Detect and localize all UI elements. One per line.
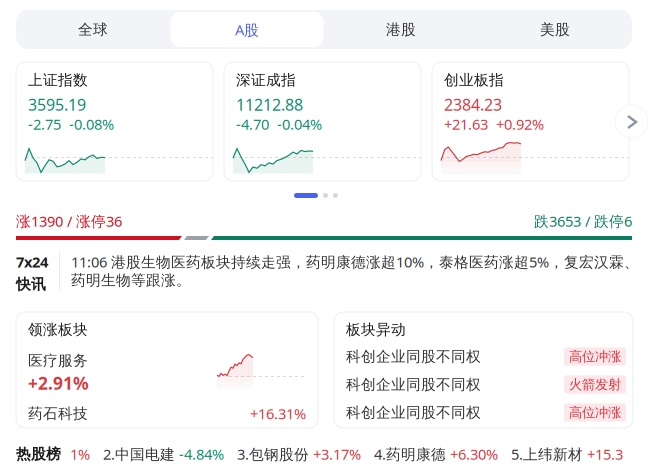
staticText: 板块异动 — [346, 320, 406, 338]
staticText: 热股榜 — [16, 445, 61, 463]
staticText: 1% — [70, 444, 90, 464]
button[interactable]: 深证成指 — [224, 62, 421, 181]
button[interactable]: 全球 — [16, 10, 170, 49]
staticText: 高位冲涨 — [569, 348, 621, 365]
staticText: -2.75 -0.08% — [28, 114, 114, 134]
button[interactable]: 上证指数 — [16, 62, 213, 181]
staticText: 11:06 港股生物医药板块持续走强，药明康德涨超10%，泰格医药涨超5%，复宏… — [71, 252, 639, 289]
staticText: +6.30% — [450, 444, 498, 464]
button[interactable]: 科创企业同股不同权 — [346, 348, 626, 365]
staticText: 美股 — [540, 20, 570, 38]
staticText: A股 — [235, 20, 259, 39]
staticText: 11212.88 — [236, 94, 303, 115]
staticText: 全球 — [78, 20, 108, 38]
button[interactable]: 美股 — [478, 10, 632, 49]
staticText: 深证成指 — [236, 71, 296, 89]
staticText: +16.31% — [250, 404, 306, 423]
button[interactable]: 港股 — [324, 10, 478, 49]
button[interactable]: 科创企业同股不同权 — [346, 404, 626, 421]
staticText: 上证指数 — [28, 71, 88, 89]
staticText: -4.84% — [179, 444, 224, 464]
staticText: 科创企业同股不同权 — [346, 347, 481, 365]
button[interactable]: 7x24 — [0, 252, 670, 296]
staticText: 港股 — [386, 20, 416, 38]
staticText: +21.63 +0.92% — [444, 114, 544, 134]
button[interactable]: 下一页 — [615, 105, 648, 138]
staticText: +15.3 — [587, 444, 623, 464]
staticText: 创业板指 — [444, 71, 504, 89]
staticText: 跌3653 / 跌停6 — [534, 211, 632, 231]
staticText: 3595.19 — [28, 94, 86, 115]
button[interactable]: A股 — [170, 10, 324, 49]
staticText: 5.上纬新材 — [511, 444, 583, 464]
staticText: 科创企业同股不同权 — [346, 403, 481, 421]
staticText: 4.药明康德 — [374, 444, 446, 464]
staticText: 药石科技 — [28, 404, 88, 422]
staticText: 科创企业同股不同权 — [346, 375, 481, 393]
staticText: 3.包钢股份 — [237, 444, 309, 464]
staticText: +3.17% — [313, 444, 361, 464]
staticText: 领涨板块 — [28, 320, 88, 338]
staticText: 涨1390 / 涨停36 — [16, 211, 122, 231]
staticText: 火箭发射 — [569, 376, 621, 393]
staticText: 2384.23 — [444, 94, 502, 115]
button[interactable]: 科创企业同股不同权 — [346, 376, 626, 393]
staticText: -4.70 -0.04% — [236, 114, 322, 134]
staticText: +2.91% — [28, 371, 89, 394]
staticText: 7x24 — [16, 252, 48, 271]
staticText: 2.中国电建 — [103, 444, 175, 464]
button[interactable]: 创业板指 — [432, 62, 629, 181]
staticText: 快讯 — [16, 275, 46, 293]
staticText: 高位冲涨 — [569, 404, 621, 421]
staticText: 医疗服务 — [28, 351, 88, 369]
